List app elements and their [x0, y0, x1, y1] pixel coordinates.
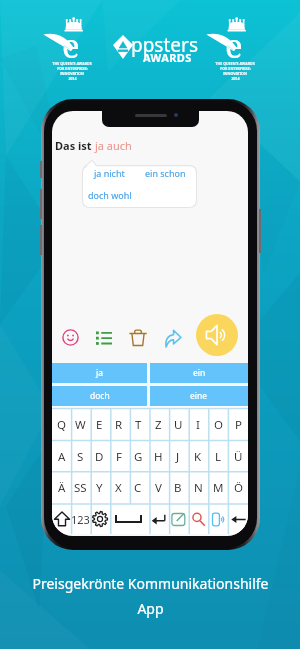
button[interactable]: Enter: [148, 504, 168, 534]
button[interactable]: L: [208, 441, 228, 472]
staticText: P: [235, 417, 242, 433]
staticText: S: [77, 449, 84, 465]
staticText: G: [134, 449, 143, 465]
button[interactable]: S: [71, 441, 90, 472]
staticText: ein: [193, 367, 206, 379]
button[interactable]: E: [90, 409, 109, 441]
button[interactable]: Ä: [52, 472, 71, 504]
staticText: L: [215, 449, 222, 465]
staticText: M: [213, 480, 224, 496]
staticText: FOR ENTERPRISE:: [220, 66, 251, 71]
staticText: A: [58, 449, 66, 465]
staticText: SS: [74, 480, 87, 496]
button[interactable]: D: [90, 441, 109, 472]
button[interactable]: Space: [109, 504, 148, 534]
button[interactable]: Search: [188, 504, 208, 534]
staticText: R: [115, 417, 123, 433]
button[interactable]: P: [228, 409, 248, 441]
button[interactable]: R: [109, 409, 128, 441]
button[interactable]: Y: [90, 472, 109, 504]
button[interactable]: Word list: [91, 325, 117, 351]
button[interactable]: K: [188, 441, 208, 472]
staticText: F: [116, 449, 122, 465]
button[interactable]: F: [109, 441, 128, 472]
staticText: App: [137, 599, 164, 618]
button[interactable]: ja: [52, 363, 147, 383]
button[interactable]: A: [52, 441, 71, 472]
staticText: N: [194, 480, 203, 496]
staticText: Ö: [234, 480, 243, 496]
button[interactable]: J: [168, 441, 188, 472]
staticText: E: [96, 417, 103, 433]
staticText: AWARDS: [143, 50, 192, 65]
button[interactable]: Emoji: [57, 324, 84, 351]
button[interactable]: O: [208, 409, 228, 441]
button[interactable]: V: [148, 472, 168, 504]
button[interactable]: Edit: [168, 504, 188, 534]
button[interactable]: H: [148, 441, 168, 472]
staticText: V: [155, 480, 162, 496]
button[interactable]: 123: [71, 504, 90, 534]
staticText: H: [154, 449, 163, 465]
button[interactable]: Ö: [228, 472, 248, 504]
button[interactable]: C: [128, 472, 148, 504]
staticText: W: [75, 417, 86, 433]
staticText: Preisgekrönte Kommunikationshilfe: [32, 574, 269, 593]
staticText: e: [225, 23, 243, 68]
staticText: C: [134, 480, 142, 496]
staticText: 2014: [231, 76, 240, 81]
button[interactable]: Speak: [196, 314, 238, 356]
button[interactable]: Backspace: [228, 504, 248, 534]
button[interactable]: U: [168, 409, 188, 441]
button[interactable]: W: [71, 409, 90, 441]
button[interactable]: Settings: [90, 504, 109, 534]
button[interactable]: Delete: [124, 324, 152, 352]
staticText: eine: [190, 390, 208, 402]
staticText: Q: [57, 417, 66, 433]
staticText: Ä: [58, 480, 66, 496]
staticText: doch wohl: [88, 189, 132, 201]
button[interactable]: X: [109, 472, 128, 504]
staticText: J: [176, 449, 180, 465]
staticText: 123: [71, 512, 90, 527]
button[interactable]: SS: [71, 472, 90, 504]
staticText: 2014: [68, 76, 77, 81]
staticText: Ü: [234, 449, 243, 465]
staticText: INNOVATION: [223, 71, 247, 76]
button[interactable]: T: [128, 409, 148, 441]
button[interactable]: G: [128, 441, 148, 472]
staticText: FOR ENTERPRISE:: [57, 66, 88, 71]
staticText: Das ist: [55, 138, 95, 153]
staticText: THE QUEEN'S AWARDS: [215, 61, 255, 66]
button[interactable]: eine: [150, 386, 248, 406]
staticText: U: [174, 417, 183, 433]
staticText: doch: [90, 390, 110, 402]
staticText: ja: [96, 367, 103, 379]
button[interactable]: N: [188, 472, 208, 504]
staticText: ppsters: [131, 32, 198, 58]
button[interactable]: Devices: [208, 504, 228, 534]
button[interactable]: Share: [159, 325, 186, 352]
staticText: I: [196, 417, 200, 433]
staticText: THE QUEEN'S AWARDS: [52, 61, 92, 66]
staticText: e: [62, 23, 80, 68]
staticText: Z: [155, 417, 162, 433]
staticText: O: [214, 417, 223, 433]
staticText: Y: [96, 480, 103, 496]
button[interactable]: I: [188, 409, 208, 441]
staticText: ja auch: [95, 138, 132, 153]
staticText: ja nicht: [94, 167, 125, 179]
button[interactable]: Q: [52, 409, 71, 441]
button[interactable]: Z: [148, 409, 168, 441]
button[interactable]: Shift: [52, 504, 71, 534]
staticText: D: [95, 449, 104, 465]
button[interactable]: ein: [150, 363, 248, 383]
staticText: K: [194, 449, 202, 465]
button[interactable]: Ü: [228, 441, 248, 472]
staticText: INNOVATION: [60, 71, 84, 76]
button[interactable]: B: [168, 472, 188, 504]
staticText: B: [174, 480, 182, 496]
button[interactable]: doch: [52, 386, 147, 406]
staticText: T: [135, 417, 142, 433]
button[interactable]: M: [208, 472, 228, 504]
